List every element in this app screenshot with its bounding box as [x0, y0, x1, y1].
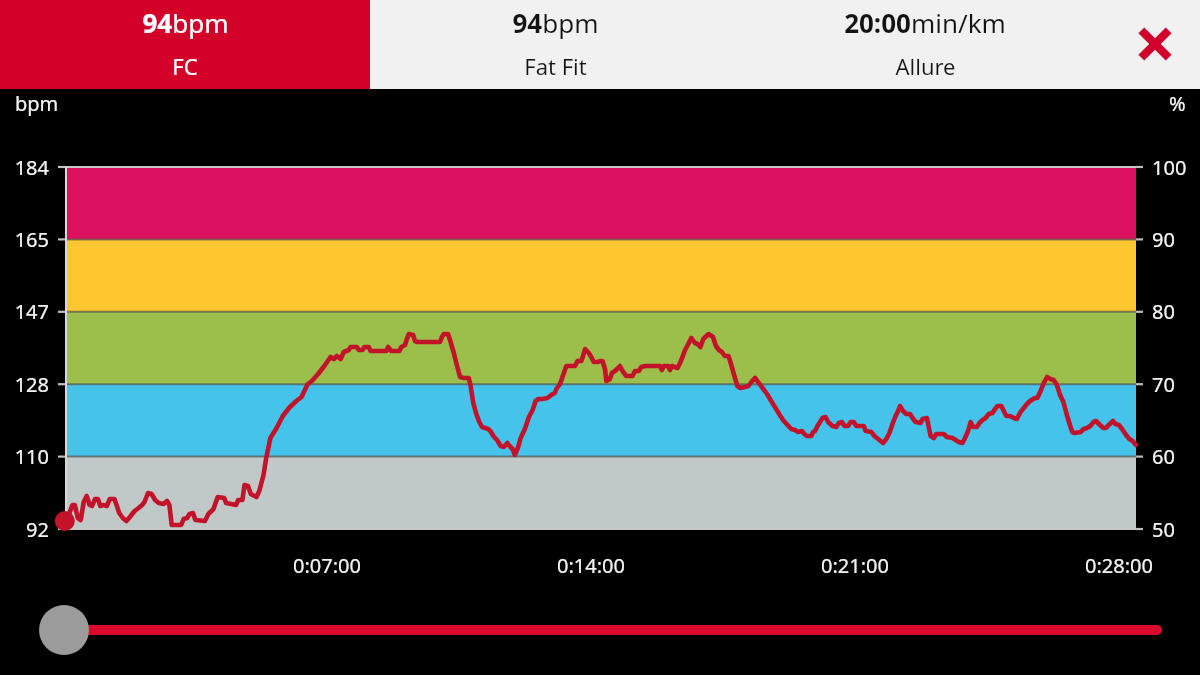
staticText: bpm — [15, 90, 59, 117]
staticText: 100 — [1152, 154, 1187, 181]
staticText: 0:07:00 — [293, 552, 361, 579]
staticText: Fat Fit — [524, 51, 587, 81]
staticText: 0:14:00 — [557, 552, 625, 579]
button[interactable]: 20:00min/km — [740, 0, 1110, 89]
staticText: 90 — [1152, 226, 1175, 253]
staticText: 128 — [14, 371, 49, 398]
staticText: 110 — [14, 443, 49, 470]
button[interactable]: Timeline position — [34, 600, 1174, 660]
staticText: 0:21:00 — [821, 552, 889, 579]
staticText: 94bpm — [142, 5, 229, 40]
staticText: FC — [172, 51, 198, 81]
staticText: % — [1169, 90, 1186, 117]
staticText: 80 — [1152, 298, 1175, 325]
button[interactable]: 94bpm — [0, 0, 370, 89]
staticText: 184 — [14, 154, 49, 181]
button[interactable]: 94bpm — [370, 0, 740, 89]
staticText: 50 — [1152, 516, 1175, 543]
staticText: 70 — [1152, 371, 1175, 398]
button[interactable]: Close — [1110, 0, 1200, 89]
staticText: 147 — [14, 298, 49, 325]
staticText: 92 — [26, 516, 49, 543]
staticText: 60 — [1152, 443, 1175, 470]
staticText: Allure — [895, 51, 956, 81]
staticText: 0:28:00 — [1085, 552, 1153, 579]
staticText: 94bpm — [512, 5, 599, 40]
staticText: 165 — [14, 226, 49, 253]
staticText: 20:00min/km — [844, 5, 1006, 40]
